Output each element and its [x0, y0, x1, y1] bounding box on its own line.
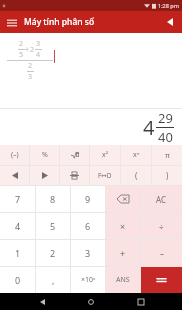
staticText: 2	[50, 247, 56, 259]
staticText: 40	[158, 128, 173, 145]
staticText: 1:28 pm	[158, 2, 179, 9]
button[interactable]: ×10ˣ	[71, 267, 105, 293]
button[interactable]: +	[106, 240, 140, 266]
button[interactable]: Move right	[30, 166, 59, 185]
staticText: –	[160, 248, 164, 259]
staticText: 3	[28, 72, 33, 82]
button[interactable]: Home	[83, 294, 99, 310]
button[interactable]: Left parenthesis	[121, 166, 151, 185]
staticText: 5	[50, 220, 56, 232]
staticText: 3	[36, 39, 41, 49]
staticText: 4	[36, 50, 41, 60]
button[interactable]: ÷	[141, 213, 182, 239]
button[interactable]: Open navigation menu	[3, 14, 20, 31]
staticText: (–)	[11, 150, 19, 160]
button[interactable]: Pi	[152, 145, 182, 165]
button[interactable]: 6	[71, 213, 105, 239]
button[interactable]: ANS	[106, 267, 140, 293]
staticText: 29	[158, 109, 173, 127]
staticText: 4	[15, 220, 21, 232]
button[interactable]: Negate	[0, 145, 29, 165]
button[interactable]: 3	[71, 240, 105, 266]
button[interactable]: 4	[0, 213, 35, 239]
staticText: ×10ˣ	[81, 275, 96, 285]
button[interactable]: Back	[162, 14, 178, 30]
button[interactable]: Square root	[60, 145, 89, 165]
staticText: 4	[143, 114, 155, 141]
staticText: 5	[19, 50, 24, 60]
staticText: 8	[50, 193, 56, 205]
staticText: F↔D	[98, 171, 112, 180]
button[interactable]: Fraction	[60, 166, 89, 185]
staticText: 1	[15, 247, 21, 259]
staticText: %	[42, 150, 48, 160]
button[interactable]: 8	[36, 186, 70, 212]
staticText: x²	[102, 150, 109, 160]
staticText: 2	[30, 45, 35, 55]
button[interactable]: AC	[141, 186, 182, 212]
button[interactable]: 5	[36, 213, 70, 239]
button[interactable]: 2	[36, 240, 70, 266]
staticText: )	[166, 170, 169, 181]
staticText: Máy tính phân số	[24, 16, 95, 28]
staticText: π	[165, 150, 170, 160]
staticText: 6	[85, 220, 91, 232]
staticText: ANS	[116, 275, 130, 285]
button[interactable]: Back	[34, 294, 50, 310]
button[interactable]: Delete	[106, 186, 140, 212]
button[interactable]: Percent	[30, 145, 59, 165]
staticText: 2	[19, 39, 24, 49]
staticText: +	[120, 247, 126, 259]
staticText: ÷	[159, 221, 164, 232]
button[interactable]: 9	[71, 186, 105, 212]
button[interactable]: Right parenthesis	[152, 166, 182, 185]
button[interactable]: Equals	[141, 267, 182, 293]
staticText: ,	[52, 274, 55, 286]
staticText: 2	[28, 61, 33, 71]
staticText: 3	[85, 247, 91, 259]
staticText: xⁿ	[133, 150, 140, 160]
staticText: +	[25, 45, 30, 55]
button[interactable]: –	[141, 240, 182, 266]
button[interactable]: ×	[106, 213, 140, 239]
staticText: 9	[85, 193, 91, 205]
staticText: AC	[156, 194, 167, 205]
staticText: (	[135, 170, 138, 181]
staticText: 7	[15, 193, 21, 205]
button[interactable]: Recent apps	[133, 294, 149, 310]
button[interactable]: 1	[0, 240, 35, 266]
button[interactable]: 0	[0, 267, 35, 293]
button[interactable]: Move left	[0, 166, 29, 185]
button[interactable]: Fraction to decimal	[90, 166, 120, 185]
button[interactable]: Square	[90, 145, 120, 165]
button[interactable]: 7	[0, 186, 35, 212]
button[interactable]: Decimal separator	[36, 267, 70, 293]
staticText: ×	[120, 220, 126, 232]
staticText: 0	[15, 274, 21, 286]
button[interactable]: Power	[121, 145, 151, 165]
